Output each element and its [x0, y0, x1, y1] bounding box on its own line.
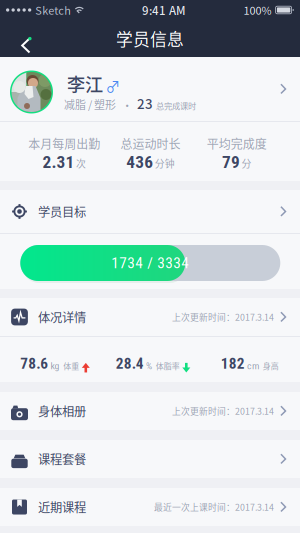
staticText: 减脂 / 塑形 [64, 96, 116, 112]
staticText: 总运动时长 [120, 135, 180, 152]
staticText: 9:41 AM [142, 2, 186, 18]
staticText: ♂ [105, 75, 120, 96]
staticText: 次 [76, 156, 86, 170]
button[interactable]: Back [8, 23, 34, 53]
staticText: 分 [242, 156, 252, 170]
staticText: Sketch [35, 2, 71, 18]
staticText: 身高 [263, 360, 279, 371]
staticText: 100% [244, 2, 272, 18]
staticText: 最近一次上课时间：2017.3.14 [154, 501, 274, 513]
staticText: • [122, 98, 131, 112]
staticText: kg [51, 360, 60, 372]
staticText: 1734 / 3334 [111, 254, 189, 272]
staticText: 体况详情 [38, 308, 86, 326]
staticText: 78.6 [20, 354, 48, 372]
staticText: 分钟 [155, 156, 175, 170]
button[interactable]: 学员目标 [0, 190, 300, 233]
button[interactable]: 课程套餐 [0, 440, 300, 478]
staticText: 28.4 [116, 354, 144, 372]
staticText: 23 [137, 93, 153, 113]
staticText: 182 [221, 354, 245, 372]
staticText: 上次更新时间：2017.3.14 [172, 405, 274, 417]
button[interactable]: 近期课程 [0, 488, 300, 526]
button[interactable]: 身体相册 [0, 392, 300, 430]
staticText: 课程套餐 [38, 450, 86, 468]
staticText: 近期课程 [38, 498, 86, 516]
staticText: 上次更新时间：2017.3.14 [172, 311, 274, 323]
staticText: 身体相册 [38, 402, 86, 420]
staticText: 体重 [63, 360, 79, 371]
staticText: 平均完成度 [207, 135, 267, 152]
button[interactable]: 李江 [0, 57, 300, 121]
staticText: 学员目标 [38, 203, 86, 220]
staticText: 学员信息 [116, 26, 184, 51]
staticText: 李江 [67, 70, 103, 97]
staticText: % [146, 360, 152, 372]
staticText: 2.31 [42, 152, 74, 172]
staticText: 本月每周出勤 [28, 135, 100, 152]
staticText: 79 [222, 152, 240, 172]
staticText: 总完成课时 [156, 100, 196, 112]
staticText: cm [247, 360, 259, 372]
button[interactable]: 体况详情 [0, 298, 300, 336]
staticText: 体脂率 [156, 360, 180, 371]
staticText: 436 [126, 152, 153, 172]
